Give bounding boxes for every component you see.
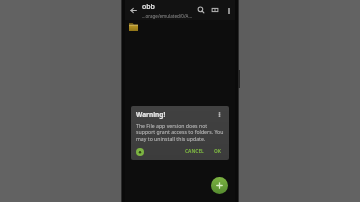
button[interactable]	[125, 20, 235, 34]
button[interactable]: Warning!	[131, 106, 229, 160]
staticText: …orage/emulated/0/Android	[142, 13, 194, 19]
staticText: OK	[214, 148, 221, 155]
button[interactable]: Search	[194, 3, 208, 17]
button[interactable]: OK	[211, 147, 224, 156]
button[interactable]: Back	[125, 2, 141, 18]
staticText: Warning!	[136, 110, 215, 119]
staticText: The File app version does not support gr…	[136, 122, 224, 143]
staticText: obb	[142, 2, 155, 12]
staticText: CANCEL	[185, 148, 204, 155]
button[interactable]: CANCEL	[182, 147, 207, 156]
button[interactable]: Add	[211, 177, 228, 194]
button[interactable]: More options	[222, 4, 235, 17]
button[interactable]: Change view	[208, 3, 222, 17]
button[interactable]: Card options	[215, 110, 224, 119]
